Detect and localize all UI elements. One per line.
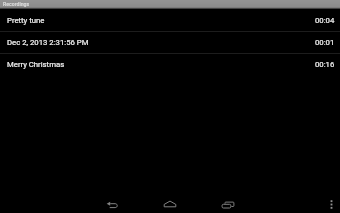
staticText: Pretty tune [7,16,315,25]
staticText: 00:04 [315,16,335,25]
staticText: 00:16 [315,60,335,69]
button[interactable]: More options [323,196,339,212]
staticText: 00:01 [315,38,335,47]
staticText: Merry Christmas [7,60,315,69]
button[interactable]: Dec 2, 2013 2:31:56 PM [0,32,340,53]
staticText: Recordings [3,1,30,7]
button[interactable]: Recent apps [218,195,238,213]
button[interactable]: Merry Christmas [0,54,340,75]
button[interactable]: Home [160,194,180,213]
button[interactable]: Pretty tune [0,9,340,31]
button[interactable]: Back [102,195,122,213]
staticText: Dec 2, 2013 2:31:56 PM [7,38,315,47]
